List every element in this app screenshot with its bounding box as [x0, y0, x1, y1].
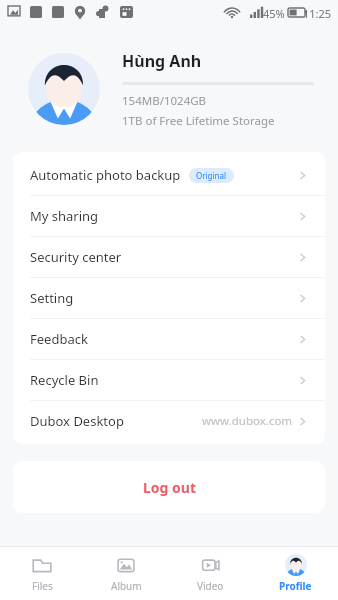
- staticText: 154MB/1024GB: [122, 93, 207, 109]
- staticText: Hùng Anh: [122, 50, 202, 72]
- staticText: Original: [196, 170, 227, 181]
- other: Profile: [285, 554, 307, 576]
- button[interactable]: Files: [0, 546, 84, 600]
- button[interactable]: Log out: [13, 461, 325, 513]
- staticText: Video: [197, 579, 224, 593]
- button[interactable]: My sharing: [13, 196, 325, 237]
- button[interactable]: Album: [84, 546, 168, 600]
- other: Files: [31, 554, 53, 576]
- staticText: Album: [111, 579, 142, 593]
- other: Video: [200, 554, 222, 576]
- staticText: Recycle Bin: [30, 371, 99, 389]
- other: Album: [115, 554, 137, 576]
- staticText: My sharing: [30, 207, 99, 225]
- staticText: 45%: [263, 6, 285, 21]
- staticText: www.dubox.com: [202, 413, 293, 429]
- staticText: Feedback: [30, 330, 88, 348]
- staticText: Security center: [30, 248, 122, 266]
- staticText: 1TB of Free Lifetime Storage: [122, 113, 275, 129]
- staticText: Log out: [143, 478, 196, 497]
- button[interactable]: Recycle Bin: [13, 360, 325, 401]
- staticText: Setting: [30, 289, 74, 307]
- button[interactable]: Automatic photo backup: [13, 155, 325, 196]
- button[interactable]: Video: [168, 546, 253, 600]
- staticText: Profile: [279, 579, 312, 593]
- button[interactable]: Security center: [13, 237, 325, 278]
- button[interactable]: Setting: [13, 278, 325, 319]
- staticText: 11:25: [303, 6, 332, 21]
- button[interactable]: Dubox Desktop: [13, 401, 325, 441]
- staticText: Files: [32, 579, 53, 593]
- staticText: Dubox Desktop: [30, 412, 124, 430]
- staticText: Automatic photo backup: [30, 166, 181, 184]
- button[interactable]: Profile: [253, 546, 338, 600]
- button[interactable]: Feedback: [13, 319, 325, 360]
